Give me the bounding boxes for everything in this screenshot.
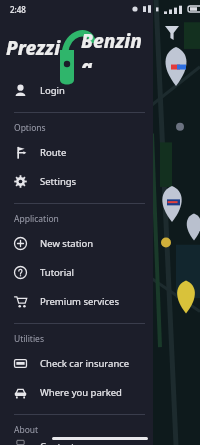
staticText: New station xyxy=(40,237,94,250)
staticText: Tutorial xyxy=(40,266,75,279)
staticText: Settings xyxy=(40,175,77,188)
button[interactable]: Tutorial xyxy=(0,258,153,287)
button[interactable]: Settings xyxy=(0,167,153,196)
staticText: Options xyxy=(14,122,46,134)
button[interactable]: New station xyxy=(0,229,153,258)
button[interactable]: Check car insurance xyxy=(0,349,153,378)
button[interactable]: Contact us xyxy=(0,440,153,445)
staticText: Premium services xyxy=(40,295,119,308)
staticText: Login xyxy=(40,84,65,97)
staticText: About xyxy=(14,424,39,436)
staticText: Check car insurance xyxy=(40,357,130,370)
staticText: 2:48 xyxy=(10,4,26,15)
staticText: Where you parked xyxy=(40,386,122,399)
staticText: Application xyxy=(14,213,59,225)
button[interactable]: Where you parked xyxy=(0,378,153,407)
button[interactable]: Login xyxy=(0,76,153,105)
button[interactable]: Premium services xyxy=(0,287,153,316)
staticText: Utilities xyxy=(14,333,44,345)
staticText: Route xyxy=(40,146,67,159)
staticText: Contact us xyxy=(40,440,88,445)
staticText: Prezzi xyxy=(6,35,61,61)
button[interactable]: Route xyxy=(0,138,153,167)
staticText: Benzina xyxy=(81,28,153,68)
